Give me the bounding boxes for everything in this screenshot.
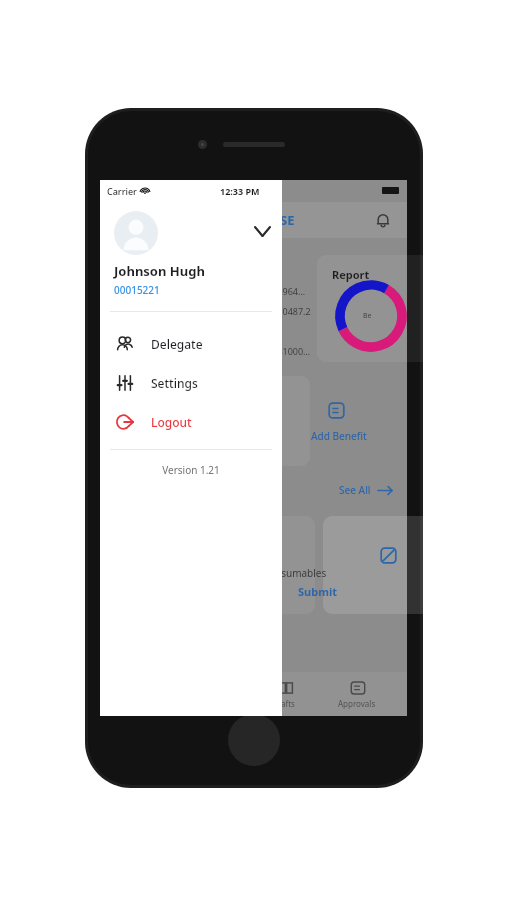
button[interactable]: Settings bbox=[100, 363, 282, 402]
staticText: Drafts bbox=[272, 698, 295, 709]
staticText: Delegate bbox=[151, 336, 203, 352]
staticText: nsumables bbox=[275, 566, 327, 580]
button[interactable]: Logout bbox=[100, 402, 282, 441]
other: Drafts bbox=[278, 680, 294, 696]
staticText: Be bbox=[363, 311, 372, 321]
staticText: JD 10487.2 bbox=[266, 305, 311, 317]
staticText: Settings bbox=[151, 375, 198, 391]
staticText: Add Benefit bbox=[311, 429, 367, 443]
button[interactable]: Delegate bbox=[100, 324, 282, 363]
staticText: Carrier bbox=[107, 185, 137, 197]
staticText: Johnson Hugh bbox=[114, 262, 205, 280]
other: Notifications bbox=[375, 212, 391, 228]
staticText: Version 1.21 bbox=[100, 463, 282, 477]
staticText: JD 9964… bbox=[266, 285, 306, 297]
staticText: JD 41000… bbox=[266, 345, 311, 357]
staticText: 12:33 PM bbox=[220, 185, 260, 197]
staticText: Logout bbox=[151, 414, 192, 430]
staticText: SE bbox=[280, 211, 295, 229]
staticText: Approvals bbox=[338, 698, 376, 709]
staticText: Report bbox=[332, 267, 370, 282]
staticText: Submit bbox=[298, 584, 337, 599]
staticText: 00015221 bbox=[114, 283, 160, 297]
other: Approvals bbox=[350, 680, 366, 696]
other: Expand profile bbox=[255, 227, 270, 236]
button[interactable]: Expand profile bbox=[100, 201, 282, 255]
other: Add Benefit bbox=[328, 402, 345, 419]
staticText: JD 0 bbox=[266, 325, 283, 337]
staticText: See All bbox=[339, 483, 371, 497]
